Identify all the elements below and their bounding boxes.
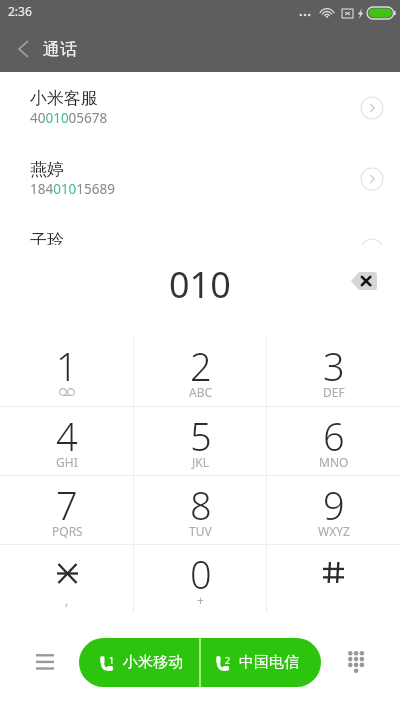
staticText: 8	[190, 479, 212, 531]
staticText: 6	[323, 410, 345, 462]
button[interactable]: 8	[134, 475, 267, 544]
button[interactable]: Back	[1, 27, 45, 71]
staticText: 010	[169, 260, 231, 309]
staticText: 2	[225, 654, 231, 666]
staticText: 中国电信	[239, 653, 299, 672]
staticText: DEF	[323, 384, 345, 400]
button[interactable]: 1	[79, 638, 199, 687]
staticText: +	[197, 592, 204, 608]
staticText: 2	[190, 340, 212, 392]
button[interactable]: 5	[134, 406, 267, 475]
staticText: MNO	[319, 454, 349, 470]
staticText: ,	[65, 592, 69, 608]
button[interactable]: Menu	[29, 646, 61, 678]
button[interactable]: 7	[0, 475, 134, 544]
staticText: 0	[190, 548, 212, 600]
staticText: 通话	[43, 39, 77, 60]
staticText: TUV	[189, 523, 212, 539]
button[interactable]: 6	[267, 406, 400, 475]
staticText: 4	[56, 410, 78, 462]
staticText: 4001005678	[30, 109, 108, 127]
button[interactable]: ,	[0, 544, 134, 613]
button[interactable]: 小米客服	[0, 72, 400, 143]
button[interactable]: 4	[0, 406, 134, 475]
staticText: 18401015689	[30, 180, 115, 198]
staticText: 1	[56, 340, 78, 392]
button[interactable]: 燕婷	[0, 143, 400, 214]
button[interactable]: Dialpad	[340, 646, 372, 678]
staticText: 小米移动	[123, 653, 183, 672]
staticText: 子玲	[30, 230, 64, 245]
button[interactable]	[267, 544, 400, 613]
staticText: 小米客服	[30, 88, 98, 109]
staticText: ABC	[189, 384, 213, 400]
button[interactable]: 2	[134, 336, 267, 406]
button[interactable]: 0	[134, 544, 267, 613]
staticText: 5	[190, 410, 212, 462]
staticText: 3	[323, 340, 345, 392]
button[interactable]: 子玲	[0, 214, 400, 245]
button[interactable]: Delete	[351, 272, 377, 290]
staticText: JKL	[192, 454, 209, 470]
button[interactable]: 1	[0, 336, 134, 406]
staticText: 1	[109, 654, 115, 666]
staticText: PQRS	[52, 523, 83, 539]
staticText: 9	[323, 479, 345, 531]
button[interactable]: 3	[267, 336, 400, 406]
staticText: 7	[56, 479, 78, 531]
staticText: 燕婷	[30, 159, 64, 180]
staticText: GHI	[56, 454, 78, 470]
staticText: WXYZ	[318, 523, 350, 539]
staticText: 2:36	[8, 3, 32, 19]
button[interactable]: 2	[201, 638, 321, 687]
button[interactable]: 9	[267, 475, 400, 544]
